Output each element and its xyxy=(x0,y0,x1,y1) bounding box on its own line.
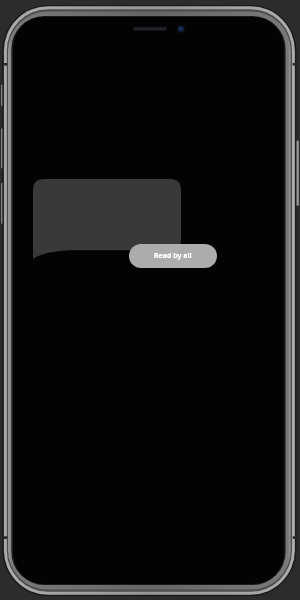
staticText: Read by all xyxy=(154,251,192,261)
button[interactable]: Read by all xyxy=(129,244,217,268)
button[interactable]: Message bubble xyxy=(33,179,181,259)
